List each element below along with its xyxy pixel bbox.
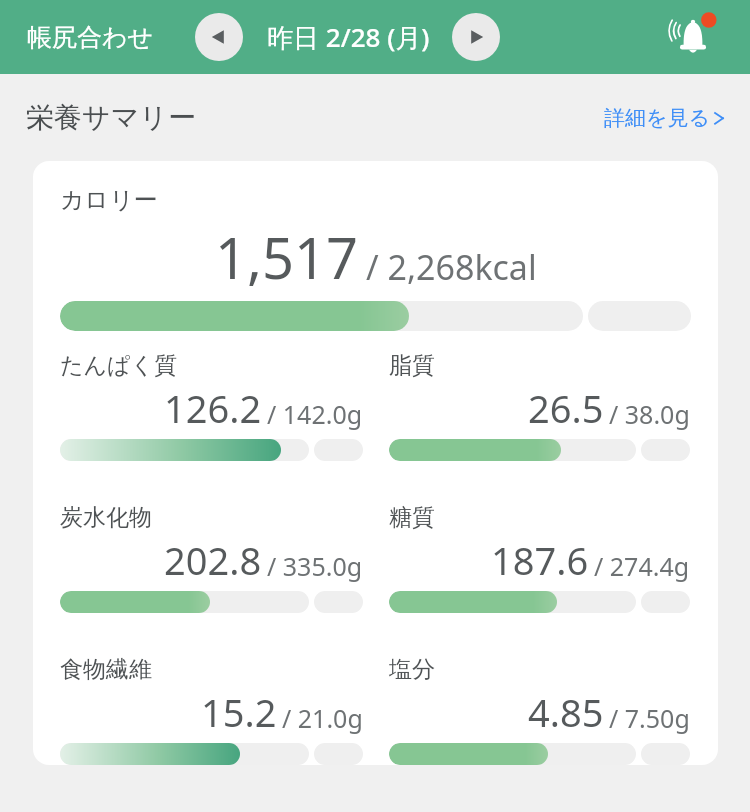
- staticText: 126.2: [164, 382, 262, 434]
- button[interactable]: Previous day: [195, 13, 243, 61]
- staticText: 202.8: [164, 534, 262, 586]
- staticText: 詳細を見る: [604, 105, 710, 131]
- staticText: / 7.50g: [609, 701, 690, 735]
- staticText: 1,517: [215, 219, 359, 295]
- button[interactable]: 詳細を見る: [604, 105, 728, 131]
- button[interactable]: カロリー: [60, 185, 691, 331]
- staticText: / 335.0g: [267, 549, 363, 583]
- staticText: 糖質: [389, 503, 435, 532]
- staticText: 栄養サマリー: [26, 100, 196, 135]
- staticText: / 38.0g: [609, 397, 690, 431]
- button[interactable]: 塩分: [389, 655, 690, 765]
- button[interactable]: Notifications: [662, 6, 724, 68]
- staticText: / 2,268kcal: [366, 244, 537, 290]
- button[interactable]: 脂質: [389, 351, 690, 461]
- button[interactable]: 炭水化物: [60, 503, 363, 613]
- staticText: 187.6: [491, 534, 589, 586]
- staticText: 炭水化物: [60, 503, 152, 532]
- button[interactable]: たんぱく質: [60, 351, 363, 461]
- staticText: / 274.4g: [594, 549, 690, 583]
- staticText: 脂質: [389, 351, 435, 380]
- button[interactable]: Next day: [452, 13, 500, 61]
- staticText: 15.2: [201, 686, 277, 738]
- staticText: 食物繊維: [60, 655, 152, 684]
- button[interactable]: 食物繊維: [60, 655, 363, 765]
- staticText: / 21.0g: [282, 701, 363, 735]
- staticText: カロリー: [60, 185, 158, 215]
- staticText: 26.5: [528, 382, 604, 434]
- staticText: 4.85: [528, 686, 604, 738]
- staticText: 帳尻合わせ: [27, 22, 154, 53]
- staticText: / 142.0g: [267, 397, 363, 431]
- staticText: たんぱく質: [60, 351, 178, 380]
- staticText: 昨日 2/28 (月): [267, 19, 430, 55]
- button[interactable]: 糖質: [389, 503, 690, 613]
- staticText: 塩分: [389, 655, 435, 684]
